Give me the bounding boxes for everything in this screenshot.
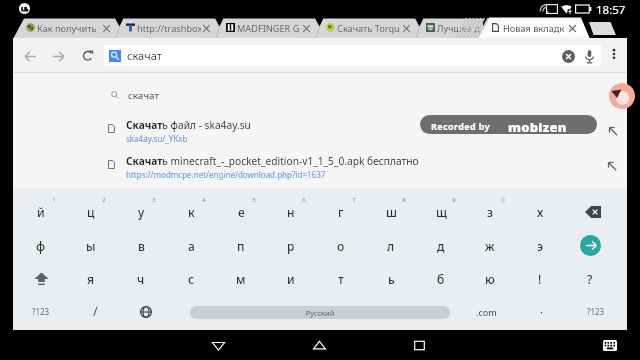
button[interactable]: Лучшее д [413,17,513,39]
button[interactable]: п [216,229,266,262]
staticText: к [188,204,195,220]
staticText: Скачать minecraft_-_pocket_edition-v1_1_… [126,154,586,168]
button[interactable]: MADFINGER G [213,17,313,39]
button[interactable]: Clear [562,50,575,63]
button[interactable]: · [516,295,566,328]
button[interactable]: ?123 [571,295,621,328]
button[interactable]: / [70,295,120,328]
button[interactable]: а [166,229,216,262]
staticText: ч [137,271,145,287]
button[interactable]: р [266,229,316,262]
staticText: х [537,204,544,220]
button[interactable] [13,84,627,106]
button[interactable]: х [515,195,565,228]
staticText: 4 [197,196,211,204]
button[interactable]: н [266,195,316,228]
button[interactable]: New tab [588,22,616,35]
staticText: ы [86,238,96,254]
button[interactable]: э [515,229,565,262]
staticText: с [188,271,195,287]
staticText: ska4ay.su/_YKxb [126,133,426,144]
staticText: 6 [297,196,311,204]
button[interactable]: Close tab [302,24,311,33]
button[interactable]: Voice search [582,49,597,64]
staticText: ! [538,271,542,287]
button[interactable]: More options [608,48,620,60]
staticText: 3 [147,196,161,204]
staticText: л [387,238,395,254]
button[interactable]: Back [20,46,41,67]
button[interactable]: ь [366,262,416,295]
button[interactable]: м [216,262,266,295]
staticText: ?123 [587,306,605,317]
button[interactable]: ж [465,229,515,262]
staticText: Русский [190,308,450,318]
button[interactable]: Change language [121,295,171,328]
button[interactable]: д [416,229,466,262]
staticText: р [287,238,295,254]
button[interactable]: Новая вкладк [478,17,590,39]
button[interactable]: Forward [48,46,69,67]
button[interactable]: б [416,262,466,295]
button[interactable]: щ [416,195,466,228]
button[interactable]: у [116,195,166,228]
button[interactable]: Recent apps [412,338,427,353]
button[interactable]: ? [565,262,615,295]
button[interactable]: ! [515,262,565,295]
staticText: 5 [247,196,261,204]
button[interactable]: ц [66,195,116,228]
button[interactable] [13,148,627,182]
staticText: 2 [97,196,111,204]
staticText: скачат [128,89,328,102]
button[interactable]: я [66,262,116,295]
button[interactable]: ю [465,262,515,295]
staticText: я [87,271,95,287]
button[interactable]: Shift [16,262,66,295]
staticText: п [237,238,245,254]
button[interactable]: ?123 [16,295,66,328]
staticText: ?123 [32,306,50,317]
staticText: 9 [447,196,461,204]
button[interactable]: к [166,195,216,228]
staticText: ц [87,204,95,220]
button[interactable]: ч [116,262,166,295]
button[interactable]: ы [66,229,116,262]
staticText: Recorded by [431,120,490,132]
button[interactable]: в [116,229,166,262]
staticText: ж [485,238,495,254]
button[interactable]: скачат [104,45,601,66]
button[interactable]: о [316,229,366,262]
staticText: https://modmcpe.net/engine/download.php?… [126,169,526,180]
button[interactable]: Close tab [402,24,411,33]
button[interactable]: Как получить [13,17,113,39]
button[interactable]: Русский [190,306,450,319]
button[interactable]: Скачать Torqu [313,17,413,39]
button[interactable]: .com [461,295,511,328]
button[interactable]: Close tab [202,24,211,33]
button[interactable]: т [316,262,366,295]
staticText: й [37,204,45,220]
button[interactable]: г [316,195,366,228]
button[interactable] [13,112,627,146]
button[interactable]: с [166,262,216,295]
button[interactable]: Enter [565,229,615,262]
button[interactable]: ш [366,195,416,228]
button[interactable]: http://trashbox [113,17,213,39]
button[interactable]: Backspace [565,195,615,228]
button[interactable]: Insert suggestion [608,126,618,136]
button[interactable]: Hide keyboard [603,340,617,351]
button[interactable]: з [465,195,515,228]
button[interactable]: Insert suggestion [607,161,617,171]
button[interactable]: Back [211,338,226,353]
staticText: 1 [47,196,61,204]
button[interactable]: Home [312,338,327,353]
button[interactable]: и [266,262,316,295]
button[interactable]: ф [16,229,66,262]
button[interactable]: Close tab [568,24,577,33]
button[interactable]: л [366,229,416,262]
button[interactable]: Close tab [102,24,111,33]
button[interactable]: е [216,195,266,228]
button[interactable]: Reload [77,45,98,66]
staticText: о [337,238,345,254]
button[interactable]: й [16,195,66,228]
